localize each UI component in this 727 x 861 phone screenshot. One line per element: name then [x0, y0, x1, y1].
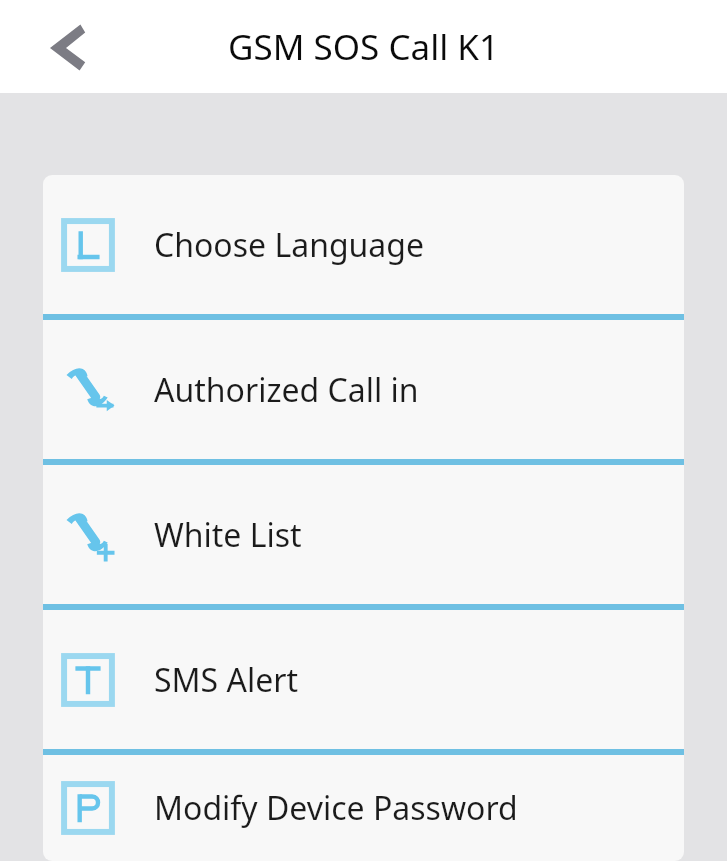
- button[interactable]: Back: [30, 11, 102, 83]
- button[interactable]: White List: [43, 465, 684, 604]
- staticText: Modify Device Password: [154, 786, 518, 830]
- staticText: SMS Alert: [154, 658, 299, 702]
- staticText: GSM SOS Call K1: [0, 23, 727, 71]
- button[interactable]: Modify Device Password: [43, 755, 684, 861]
- button[interactable]: Authorized Call in: [43, 320, 684, 459]
- button[interactable]: SMS Alert: [43, 610, 684, 749]
- staticText: Choose Language: [154, 223, 425, 267]
- button[interactable]: Choose Language: [43, 175, 684, 314]
- staticText: Authorized Call in: [154, 368, 419, 412]
- staticText: White List: [154, 513, 302, 557]
